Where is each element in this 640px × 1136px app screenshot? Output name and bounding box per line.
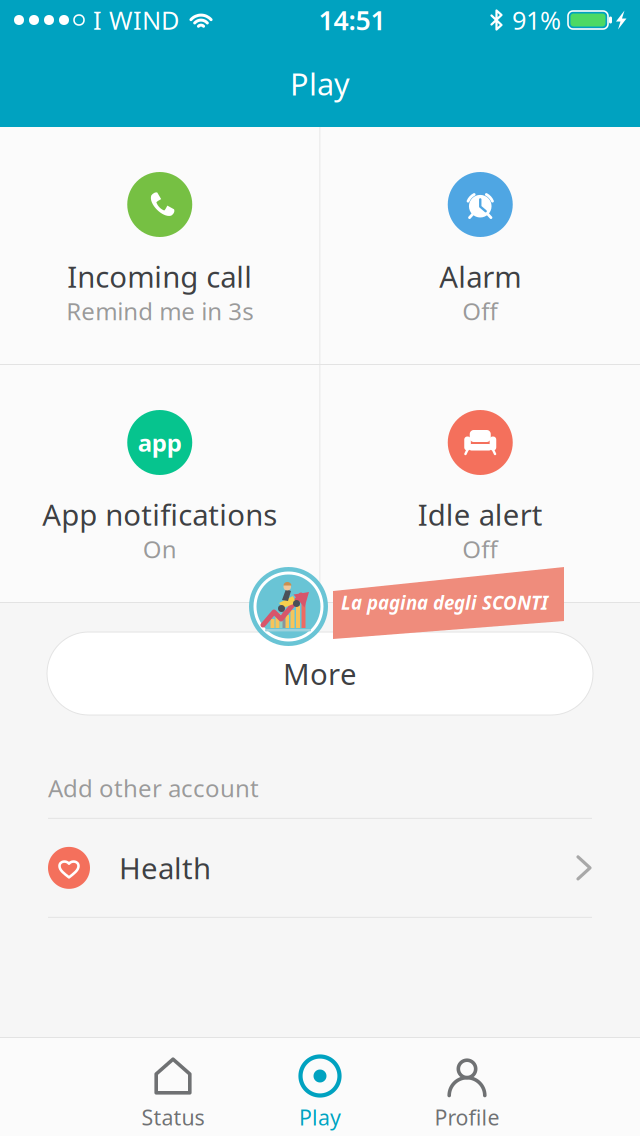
button[interactable]: More	[47, 632, 593, 715]
staticText: Status	[141, 1103, 204, 1131]
staticText: app	[138, 427, 182, 458]
staticText: Off	[462, 295, 498, 327]
button[interactable]: app	[0, 365, 319, 602]
button[interactable]: Play	[246, 1038, 393, 1136]
staticText: On	[143, 533, 177, 565]
staticText: Play	[299, 1103, 341, 1131]
staticText: 91%	[512, 3, 561, 37]
staticText: 14:51	[318, 2, 385, 38]
staticText: Remind me in 3s	[66, 295, 253, 327]
staticText: Idle alert	[418, 495, 543, 534]
staticText: I WIND	[93, 3, 179, 37]
button[interactable]: Alarm	[320, 127, 640, 364]
staticText: Add other account	[48, 772, 259, 804]
button[interactable]: Status	[99, 1038, 246, 1136]
staticText: La pagina degli SCONTI	[341, 590, 548, 615]
staticText: More	[283, 654, 357, 693]
staticText: App notifications	[42, 495, 277, 534]
staticText: Alarm	[439, 257, 521, 296]
button[interactable]: Idle alert	[320, 365, 640, 602]
button[interactable]: Profile	[393, 1038, 540, 1136]
staticText: Profile	[434, 1103, 499, 1131]
staticText: Incoming call	[67, 257, 252, 296]
staticText: Play	[290, 63, 350, 104]
button[interactable]: Health	[48, 819, 592, 917]
staticText: Health	[119, 848, 211, 887]
button[interactable]: Advertisement: La pagina degli SCONTI	[249, 567, 564, 646]
staticText: Off	[462, 533, 498, 565]
button[interactable]: Incoming call	[0, 127, 319, 364]
